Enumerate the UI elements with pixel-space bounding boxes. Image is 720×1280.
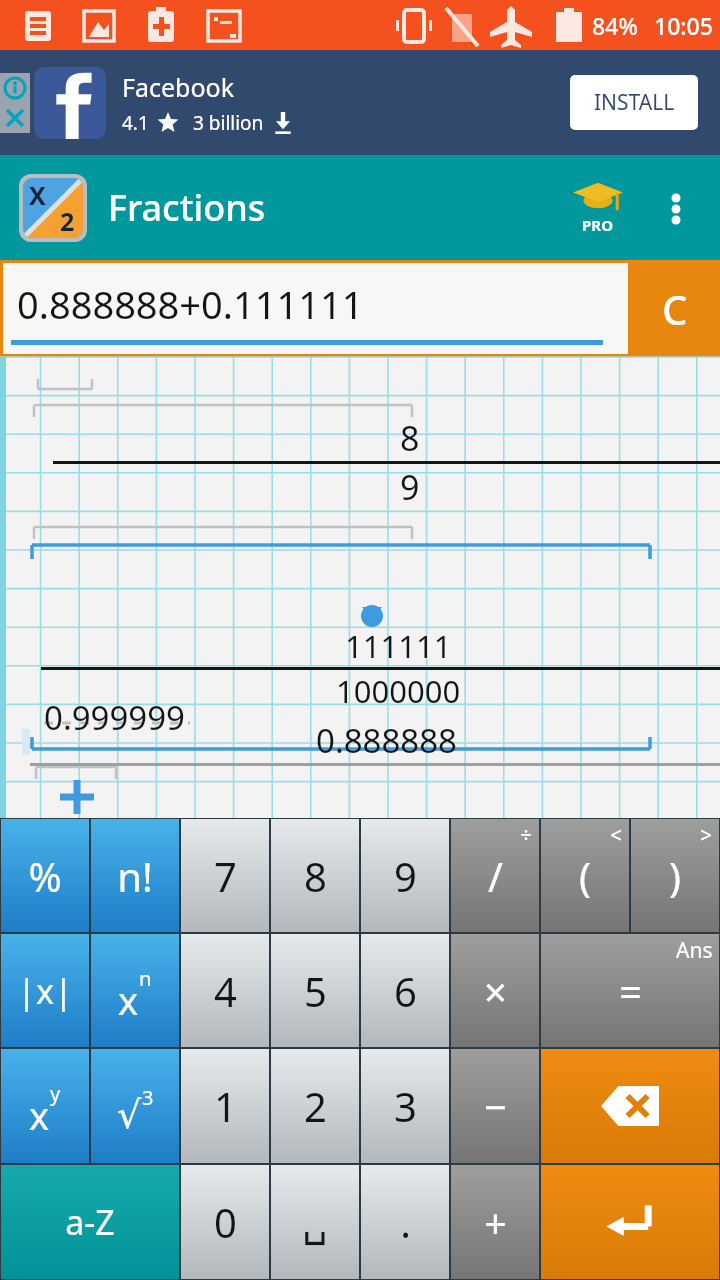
staticText: − (484, 1079, 507, 1133)
staticText: √ (117, 1093, 142, 1137)
staticText: > (700, 821, 713, 850)
button[interactable]: Ad info (0, 73, 30, 103)
staticText: 84% (592, 10, 638, 41)
button[interactable]: . (361, 1165, 449, 1279)
staticText: INSTALL (594, 88, 675, 117)
staticText: a-Z (65, 1199, 115, 1245)
button[interactable]: x (91, 934, 179, 1047)
button[interactable]: + (451, 1165, 539, 1279)
staticText: Ans (676, 936, 713, 965)
button[interactable]: Close ad (0, 103, 30, 133)
button[interactable]: n! (91, 819, 179, 932)
staticText: 0.888888+0.111111 (17, 278, 364, 330)
staticText: 8 (400, 415, 420, 461)
staticText: 5 (304, 964, 327, 1018)
staticText: PRO (582, 215, 614, 235)
button[interactable]: 3 (361, 1049, 449, 1163)
button[interactable]: % (1, 819, 89, 932)
button[interactable]: App icon (16, 171, 90, 245)
staticText: 4.1 (122, 110, 149, 136)
button[interactable]: |x| (1, 934, 89, 1047)
button[interactable]: 5 (271, 934, 359, 1047)
staticText: 3 (394, 1079, 417, 1133)
staticText: 9 (394, 849, 417, 903)
staticText: 3 (142, 1084, 154, 1111)
staticText: Fractions (108, 183, 266, 232)
staticText: y (50, 1080, 61, 1107)
button[interactable]: 9 (361, 819, 449, 932)
staticText: < (610, 821, 623, 850)
staticText: ␣ (302, 1199, 328, 1246)
staticText: X (29, 178, 46, 212)
staticText: 1 (214, 1079, 237, 1133)
button[interactable]: − (451, 1049, 539, 1163)
button[interactable]: a-Z (1, 1165, 179, 1279)
staticText: ) (669, 849, 681, 903)
staticText: n (139, 965, 152, 992)
staticText: Facebook (122, 70, 235, 104)
button[interactable]: INSTALL (570, 75, 698, 130)
staticText: × (484, 964, 507, 1018)
staticText: 3 billion (193, 110, 264, 136)
button[interactable]: √ (91, 1049, 179, 1163)
staticText: 111111 (345, 625, 452, 667)
button[interactable]: = (541, 934, 719, 1047)
button[interactable]: ␣ (271, 1165, 359, 1279)
button[interactable]: More options (648, 180, 704, 236)
staticText: = (619, 964, 642, 1018)
staticText: 1000000 (336, 670, 461, 712)
button[interactable]: ) (631, 819, 719, 932)
staticText: . (400, 1195, 411, 1249)
button[interactable]: 7 (181, 819, 269, 932)
button[interactable]: Backspace (541, 1049, 719, 1163)
staticText: 8 (304, 849, 327, 903)
staticText: x (29, 1089, 50, 1141)
button[interactable]: / (451, 819, 539, 932)
button[interactable]: Enter (541, 1165, 719, 1279)
staticText: C (662, 282, 688, 336)
staticText: 2 (60, 204, 75, 238)
staticText: ( (579, 849, 591, 903)
staticText: % (28, 849, 62, 903)
staticText: x (118, 974, 139, 1026)
staticText: 7 (214, 849, 237, 903)
staticText: 2 (304, 1079, 327, 1133)
button[interactable]: 0 (181, 1165, 269, 1279)
button[interactable]: C (632, 263, 717, 354)
button[interactable]: x (1, 1049, 89, 1163)
staticText: 10:05 PM (654, 10, 720, 41)
staticText: 0.999999 (44, 695, 185, 740)
staticText: 4 (214, 964, 237, 1018)
button[interactable]: 1 (181, 1049, 269, 1163)
button[interactable]: × (451, 934, 539, 1047)
staticText: 0 (214, 1195, 237, 1249)
button[interactable]: 0.888888+0.111111 (3, 263, 628, 354)
staticText: + (484, 1195, 507, 1249)
button[interactable]: 4 (181, 934, 269, 1047)
button[interactable]: Pro version (558, 168, 638, 248)
staticText: 0.888888 (316, 718, 457, 763)
staticText: |x| (17, 968, 73, 1014)
button[interactable]: 8 (271, 819, 359, 932)
staticText: ÷ (520, 821, 533, 850)
staticText: n! (117, 849, 153, 903)
button[interactable]: 2 (271, 1049, 359, 1163)
staticText: / (488, 849, 503, 903)
staticText: 9 (400, 464, 420, 510)
button[interactable]: ( (541, 819, 629, 932)
button[interactable]: 6 (361, 934, 449, 1047)
staticText: 6 (394, 964, 417, 1018)
